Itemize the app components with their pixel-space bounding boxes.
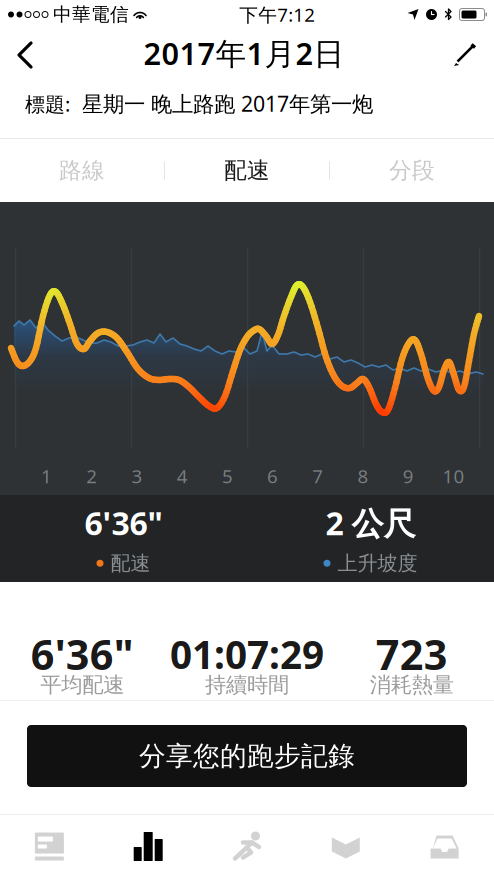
button[interactable]: Edit	[434, 31, 494, 79]
staticText: 5	[222, 464, 233, 488]
staticText: 1	[41, 464, 52, 488]
staticText: 配速	[110, 551, 150, 576]
staticText: 分享您的跑步記錄	[139, 740, 355, 772]
staticText: 2 公尺	[325, 501, 415, 544]
button[interactable]: 分享您的跑步記錄	[27, 725, 467, 787]
button[interactable]: Activity	[198, 815, 296, 878]
staticText: 消耗熱量	[370, 672, 454, 698]
staticText: 路線	[59, 157, 105, 184]
staticText: 723	[376, 627, 448, 681]
staticText: 下午7:12	[239, 2, 315, 27]
button[interactable]: Back	[0, 29, 54, 81]
staticText: 中華電信	[53, 3, 129, 26]
staticText: 2017年1月2日	[143, 33, 344, 73]
button[interactable]: 路線	[0, 139, 164, 202]
staticText: 4	[177, 464, 188, 488]
button[interactable]: Inbox	[395, 815, 494, 878]
staticText: 01:07:29	[170, 628, 324, 680]
staticText: 10	[442, 464, 464, 488]
staticText: 7	[312, 464, 323, 488]
button[interactable]: 配速	[165, 139, 329, 202]
staticText: 6	[267, 464, 278, 488]
staticText: 2	[86, 464, 97, 488]
staticText: 配速	[224, 157, 270, 184]
staticText: 8	[357, 464, 368, 488]
staticText: 標題:	[25, 91, 70, 117]
staticText: 3	[131, 464, 142, 488]
button[interactable]: Stats	[99, 815, 198, 878]
staticText: 平均配速	[40, 672, 124, 698]
staticText: 持續時間	[205, 672, 289, 698]
staticText: 上升坡度	[337, 551, 417, 576]
staticText: 9	[403, 464, 414, 488]
button[interactable]: Achievements	[296, 815, 395, 878]
staticText: 6'36"	[31, 627, 134, 681]
staticText: 6'36"	[84, 501, 162, 544]
button[interactable]: News	[0, 815, 99, 878]
button[interactable]: 分段	[330, 139, 494, 202]
staticText: 星期一 晚上路跑 2017年第一炮	[70, 89, 373, 118]
staticText: 分段	[389, 157, 435, 184]
